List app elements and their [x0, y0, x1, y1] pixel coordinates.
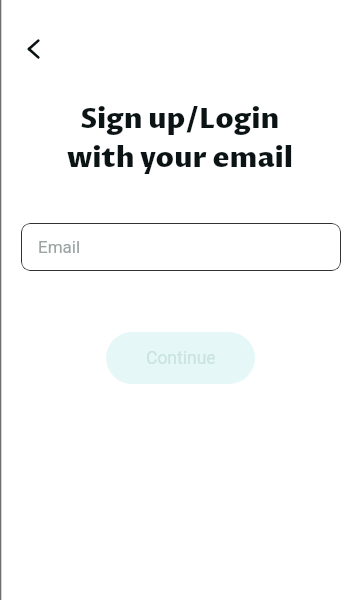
staticText: Continue	[146, 348, 216, 369]
button[interactable]: Email	[21, 223, 341, 271]
button[interactable]: Continue	[106, 332, 255, 384]
staticText: Email	[38, 237, 81, 257]
button[interactable]: Back	[12, 32, 46, 66]
staticText: Sign up/Login with your email	[0, 101, 360, 178]
